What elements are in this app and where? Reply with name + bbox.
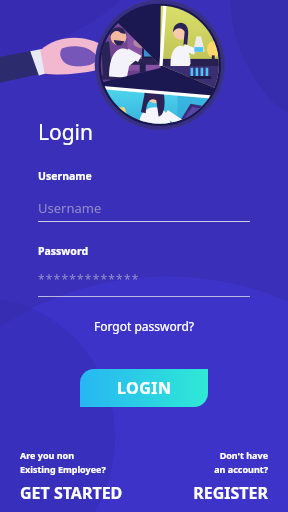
staticText: LOGIN — [117, 377, 172, 399]
button[interactable]: Username — [38, 195, 250, 221]
button[interactable]: Don't have — [144, 449, 268, 504]
staticText: REGISTER — [193, 482, 268, 504]
staticText: an account? — [214, 463, 268, 475]
staticText: ************* — [38, 271, 140, 287]
staticText: Forgot password? — [94, 318, 195, 334]
staticText: Username — [38, 199, 102, 217]
staticText: GET STARTED — [20, 482, 123, 504]
staticText: Password — [38, 244, 89, 258]
staticText: Username — [38, 169, 92, 183]
staticText: Don't have — [219, 449, 268, 461]
button[interactable]: Forgot password? — [88, 315, 201, 337]
button[interactable]: ************* — [38, 268, 250, 290]
staticText: Existing Employee? — [20, 463, 106, 475]
staticText: Login — [38, 118, 94, 147]
staticText: Are you non — [20, 449, 75, 461]
button[interactable]: Are you non — [20, 449, 144, 504]
button[interactable]: LOGIN — [80, 369, 208, 407]
